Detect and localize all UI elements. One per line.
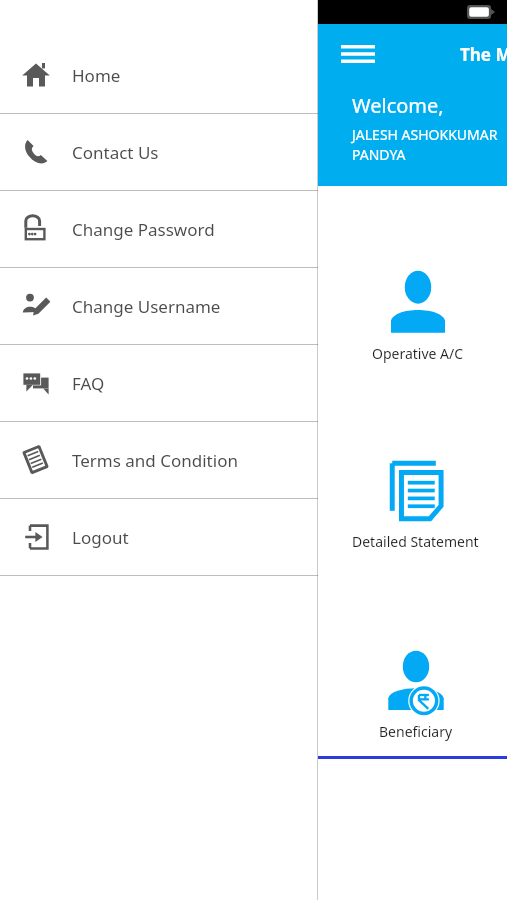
button[interactable]: Open navigation drawer xyxy=(338,34,378,74)
staticText: FAQ xyxy=(72,372,105,395)
button[interactable]: Terms and Condition xyxy=(0,422,318,498)
staticText: Detailed Statement xyxy=(352,532,479,551)
button[interactable]: Beneficiary xyxy=(318,648,507,741)
staticText: The Mah xyxy=(460,43,507,66)
staticText: Contact Us xyxy=(72,141,159,164)
button[interactable]: Change Password xyxy=(0,191,318,267)
staticText: Change Username xyxy=(72,295,221,318)
staticText: Terms and Condition xyxy=(72,449,238,472)
button[interactable]: Detailed Statement xyxy=(318,458,507,551)
button[interactable]: Contact Us xyxy=(0,114,318,190)
button[interactable]: Logout xyxy=(0,499,318,575)
staticText: Operative A/C xyxy=(372,344,464,363)
button[interactable]: FAQ xyxy=(0,345,318,421)
button[interactable]: Change Username xyxy=(0,268,318,344)
staticText: JALESH ASHOKKUMAR PANDYA xyxy=(352,125,498,165)
staticText: Home xyxy=(72,64,121,87)
staticText: Beneficiary xyxy=(379,722,453,741)
button[interactable]: Operative A/C xyxy=(318,268,507,363)
button[interactable]: Home xyxy=(0,37,318,113)
staticText: Change Password xyxy=(72,218,215,241)
staticText: Logout xyxy=(72,526,129,549)
staticText: Welcome, xyxy=(352,92,444,119)
